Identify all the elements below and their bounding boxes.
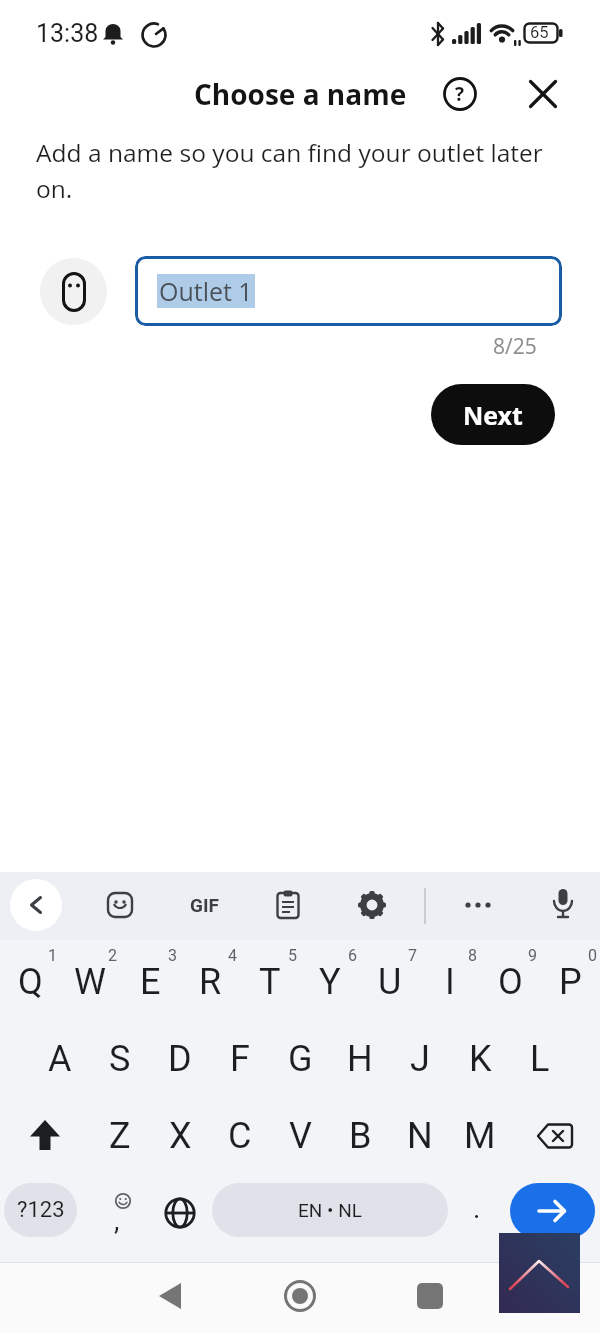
- staticText: H: [347, 1038, 373, 1080]
- button[interactable]: G: [270, 1020, 330, 1097]
- button[interactable]: B: [330, 1097, 390, 1174]
- staticText: 65: [530, 23, 549, 42]
- staticText: I: [445, 961, 455, 1003]
- button[interactable]: D: [150, 1020, 210, 1097]
- staticText: C: [228, 1115, 252, 1157]
- staticText: W: [74, 961, 106, 1003]
- button[interactable]: U: [360, 943, 420, 1020]
- staticText: Next: [463, 398, 523, 432]
- staticText: Y: [319, 961, 341, 1003]
- button[interactable]: S: [90, 1020, 150, 1097]
- button[interactable]: [510, 1183, 595, 1239]
- staticText: Q: [18, 961, 43, 1003]
- staticText: Add a name so you can find your outlet l…: [36, 136, 543, 205]
- staticText: D: [168, 1038, 192, 1080]
- button[interactable]: Next: [431, 384, 555, 445]
- staticText: V: [289, 1115, 312, 1157]
- button[interactable]: P: [540, 943, 600, 1020]
- button[interactable]: F: [210, 1020, 270, 1097]
- staticText: .: [473, 1192, 481, 1225]
- staticText: 13:38: [36, 19, 99, 48]
- button[interactable]: A: [30, 1020, 90, 1097]
- button[interactable]: [549, 887, 577, 923]
- staticText: Choose a name: [194, 75, 407, 113]
- staticText: J: [410, 1038, 430, 1080]
- button[interactable]: ?123: [4, 1183, 77, 1237]
- button[interactable]: [150, 1276, 190, 1316]
- staticText: G: [288, 1038, 313, 1080]
- button[interactable]: V: [270, 1097, 330, 1174]
- button[interactable]: [499, 1233, 580, 1313]
- staticText: O: [498, 961, 523, 1003]
- button[interactable]: [274, 889, 302, 921]
- button[interactable]: M: [450, 1097, 510, 1174]
- button[interactable]: Z: [90, 1097, 150, 1174]
- button[interactable]: X: [150, 1097, 210, 1174]
- staticText: 2: [108, 946, 117, 965]
- staticText: 3: [168, 946, 177, 965]
- button[interactable]: Outlet 1: [135, 256, 562, 326]
- staticText: T: [259, 961, 281, 1003]
- button[interactable]: T: [240, 943, 300, 1020]
- staticText: E: [140, 961, 161, 1003]
- staticText: U: [378, 961, 402, 1003]
- staticText: 1: [48, 946, 57, 965]
- button[interactable]: C: [210, 1097, 270, 1174]
- staticText: 6: [348, 946, 357, 965]
- button[interactable]: [0, 1097, 90, 1174]
- button[interactable]: L: [510, 1020, 570, 1097]
- button[interactable]: EN • NL: [212, 1183, 448, 1237]
- button[interactable]: [105, 890, 135, 920]
- button[interactable]: [10, 879, 62, 931]
- button[interactable]: W: [60, 943, 120, 1020]
- staticText: 7: [408, 946, 417, 965]
- staticText: ,: [114, 1205, 120, 1237]
- staticText: B: [349, 1115, 372, 1157]
- button[interactable]: Q: [0, 943, 60, 1020]
- staticText: 5: [288, 946, 297, 965]
- staticText: ?: [455, 81, 465, 107]
- staticText: EN • NL: [298, 1199, 362, 1221]
- button[interactable]: R: [180, 943, 240, 1020]
- button[interactable]: I: [420, 943, 480, 1020]
- staticText: 8: [468, 946, 477, 965]
- button[interactable]: [410, 1276, 450, 1316]
- button[interactable]: [357, 890, 387, 920]
- staticText: 8/25: [493, 332, 537, 358]
- staticText: L: [530, 1038, 550, 1080]
- button[interactable]: J: [390, 1020, 450, 1097]
- button[interactable]: K: [450, 1020, 510, 1097]
- staticText: P: [559, 961, 582, 1003]
- staticText: M: [464, 1115, 496, 1157]
- button[interactable]: [510, 1097, 600, 1174]
- button[interactable]: N: [390, 1097, 450, 1174]
- staticText: A: [48, 1038, 72, 1080]
- button[interactable]: Y: [300, 943, 360, 1020]
- staticText: 0: [588, 946, 597, 965]
- staticText: R: [199, 961, 222, 1003]
- button[interactable]: [156, 1174, 204, 1251]
- staticText: GIF: [190, 894, 219, 916]
- staticText: 4: [228, 946, 237, 965]
- staticText: K: [469, 1038, 492, 1080]
- staticText: Z: [109, 1115, 131, 1157]
- button[interactable]: E: [120, 943, 180, 1020]
- button[interactable]: [460, 890, 496, 920]
- button[interactable]: ,: [96, 1174, 144, 1251]
- staticText: F: [230, 1038, 250, 1080]
- staticText: ?123: [17, 1197, 65, 1223]
- staticText: X: [169, 1115, 192, 1157]
- button[interactable]: .: [455, 1174, 499, 1251]
- button[interactable]: [529, 80, 557, 108]
- button[interactable]: O: [480, 943, 540, 1020]
- button[interactable]: H: [330, 1020, 390, 1097]
- button[interactable]: [280, 1276, 320, 1316]
- staticText: 9: [528, 946, 537, 965]
- button[interactable]: ?: [442, 76, 478, 112]
- staticText: Outlet 1: [159, 274, 253, 308]
- staticText: S: [109, 1038, 131, 1080]
- staticText: N: [407, 1115, 433, 1157]
